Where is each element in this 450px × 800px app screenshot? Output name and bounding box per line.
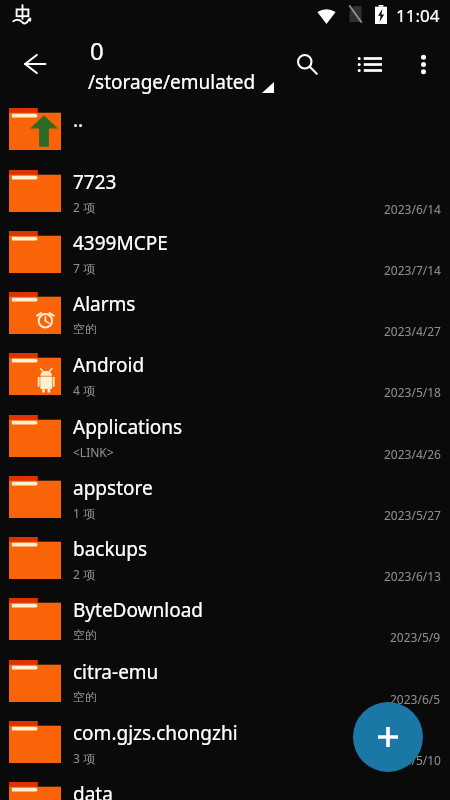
staticText: /storage/emulated <box>88 69 256 95</box>
staticText: Alarms <box>73 291 136 317</box>
button[interactable]: data <box>0 772 450 800</box>
staticText: data <box>73 781 113 800</box>
staticText: 2023/6/13 <box>384 568 441 584</box>
button[interactable]: Alarms <box>0 282 450 344</box>
staticText: 7723 <box>73 169 117 195</box>
staticText: citra-emu <box>73 659 159 685</box>
button[interactable]: 4399MCPE <box>0 221 450 283</box>
button[interactable]: 7723 <box>0 160 450 222</box>
staticText: 2023/7/14 <box>384 262 441 278</box>
staticText: ByteDownload <box>73 597 204 623</box>
staticText: 2 项 <box>73 566 95 582</box>
staticText: 11:04 <box>396 4 440 27</box>
staticText: 7 项 <box>73 260 95 276</box>
button[interactable]: Back <box>12 41 58 87</box>
staticText: 2023/4/27 <box>384 323 441 339</box>
staticText: <LINK> <box>73 444 114 460</box>
staticText: 空的 <box>73 627 97 642</box>
staticText: 2023/5/10 <box>384 752 441 768</box>
staticText: Applications <box>73 414 183 440</box>
staticText: Android <box>73 352 145 378</box>
staticText: 2023/4/26 <box>384 446 441 462</box>
staticText: 空的 <box>73 689 97 704</box>
button[interactable]: View list <box>348 42 392 86</box>
staticText: .. <box>73 107 84 133</box>
button[interactable]: ByteDownload <box>0 588 450 650</box>
staticText: 2023/5/18 <box>384 384 441 400</box>
staticText: 2023/6/14 <box>384 201 441 217</box>
button[interactable]: Add <box>353 702 423 772</box>
button[interactable]: citra-emu <box>0 650 450 712</box>
button[interactable]: More options <box>401 42 445 86</box>
button[interactable]: appstore <box>0 466 450 528</box>
staticText: backups <box>73 536 148 562</box>
button[interactable]: backups <box>0 527 450 589</box>
staticText: 2023/5/27 <box>384 507 441 523</box>
staticText: 2023/5/9 <box>390 629 441 645</box>
staticText: 0 <box>90 34 104 67</box>
staticText: 2 项 <box>73 199 95 215</box>
staticText: 3 项 <box>73 750 95 766</box>
button[interactable]: Android <box>0 343 450 405</box>
staticText: 1 项 <box>73 505 95 521</box>
staticText: 4399MCPE <box>73 230 168 256</box>
staticText: 空的 <box>73 321 97 336</box>
staticText: 4 项 <box>73 382 95 398</box>
button[interactable]: Applications <box>0 405 450 467</box>
staticText: 2023/6/5 <box>390 691 441 707</box>
button[interactable]: com.gjzs.chongzhi <box>0 711 450 773</box>
button[interactable]: .. <box>0 98 450 160</box>
button[interactable]: Search <box>285 42 329 86</box>
staticText: appstore <box>73 475 153 501</box>
staticText: com.gjzs.chongzhi <box>73 720 238 746</box>
